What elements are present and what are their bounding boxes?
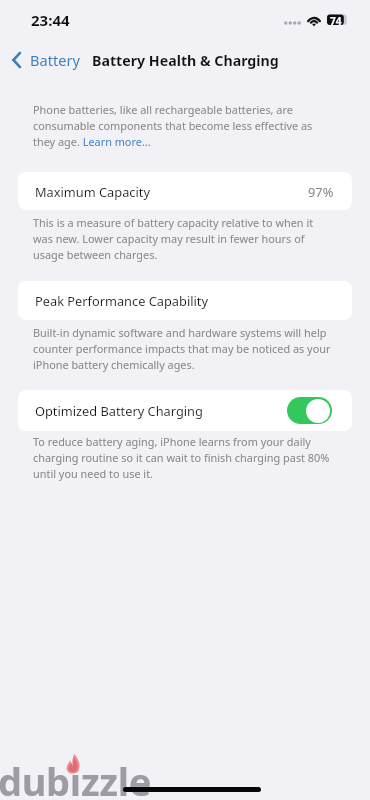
- staticText: 23:44: [31, 10, 70, 30]
- staticText: dubizzle: [0, 755, 152, 800]
- staticText: Optimized Battery Charging: [35, 402, 203, 419]
- button[interactable]: Optimized Battery Charging toggle: [287, 397, 332, 424]
- staticText: To reduce battery aging, iPhone learns f…: [33, 434, 334, 481]
- staticText: 74: [330, 14, 342, 28]
- staticText: Battery Health & Charging: [92, 51, 279, 70]
- staticText: Peak Performance Capability: [35, 292, 208, 309]
- staticText: Maximum Capacity: [35, 183, 150, 200]
- staticText: 97%: [308, 183, 334, 200]
- button[interactable]: Optimized Battery Charging: [18, 390, 352, 431]
- button[interactable]: Battery: [7, 47, 87, 73]
- staticText: Built-in dynamic software and hardware s…: [33, 325, 334, 372]
- button[interactable]: Maximum Capacity 97 percent: [18, 172, 352, 210]
- staticText: Battery: [30, 50, 80, 70]
- staticText: Phone batteries, like all rechargeable b…: [33, 102, 320, 149]
- staticText: This is a measure of battery capacity re…: [33, 215, 320, 262]
- button[interactable]: Peak Performance Capability: [18, 281, 352, 320]
